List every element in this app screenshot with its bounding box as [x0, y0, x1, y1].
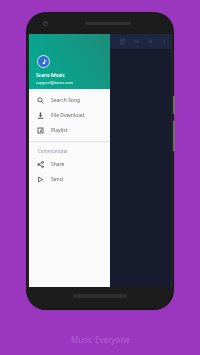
button[interactable]: Share [29, 157, 110, 172]
staticText: Share [51, 161, 65, 168]
button[interactable]: List [115, 34, 129, 49]
staticText: Send [51, 176, 63, 183]
staticText: Communicate [38, 148, 68, 154]
button[interactable]: Scans Music [29, 34, 110, 89]
button[interactable]: Search Song [29, 93, 110, 108]
button[interactable]: Send [29, 172, 110, 187]
button[interactable]: Shuffle [129, 34, 143, 49]
button[interactable]: Close [143, 34, 157, 49]
staticText: Scans Music [36, 72, 65, 79]
staticText: Search Song [51, 97, 81, 104]
staticText: Music Everyone [71, 334, 130, 345]
button[interactable]: Playlist [29, 123, 110, 138]
staticText: Playlist [51, 127, 68, 134]
button[interactable]: File Download [29, 108, 110, 123]
staticText: File Download [51, 112, 85, 119]
staticText: support@icons.com [36, 80, 74, 85]
button[interactable]: More options [157, 34, 171, 49]
